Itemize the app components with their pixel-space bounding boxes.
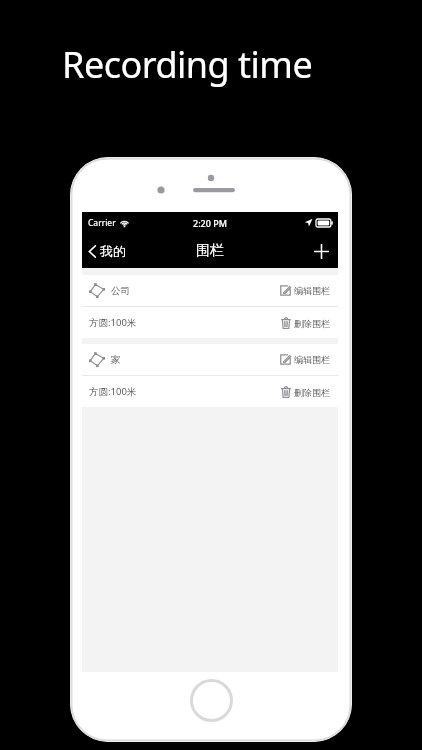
staticText: 围栏 — [196, 242, 224, 260]
button[interactable]: Home — [190, 679, 233, 722]
staticText: 编辑围栏 — [294, 285, 330, 296]
staticText: 方圆:100米 — [89, 385, 137, 398]
staticText: 公司 — [111, 285, 130, 297]
staticText: 方圆:100米 — [89, 316, 137, 329]
button[interactable]: Add fence — [304, 234, 338, 268]
button[interactable]: 公司 — [82, 280, 136, 301]
button[interactable]: 家 — [82, 349, 127, 370]
button[interactable]: 我的 — [82, 239, 134, 263]
staticText: 删除围栏 — [294, 318, 330, 329]
button[interactable]: 删除围栏 — [275, 383, 338, 401]
button[interactable]: 编辑围栏 — [274, 351, 338, 368]
staticText: 我的 — [100, 243, 126, 259]
staticText: 2:20 PM — [193, 217, 227, 229]
button[interactable]: 删除围栏 — [275, 314, 338, 332]
staticText: 编辑围栏 — [294, 354, 330, 365]
staticText: Carrier — [88, 217, 116, 229]
staticText: 家 — [111, 354, 121, 366]
staticText: Recording time — [62, 40, 313, 89]
button[interactable]: 编辑围栏 — [274, 282, 338, 299]
staticText: 删除围栏 — [294, 387, 330, 398]
